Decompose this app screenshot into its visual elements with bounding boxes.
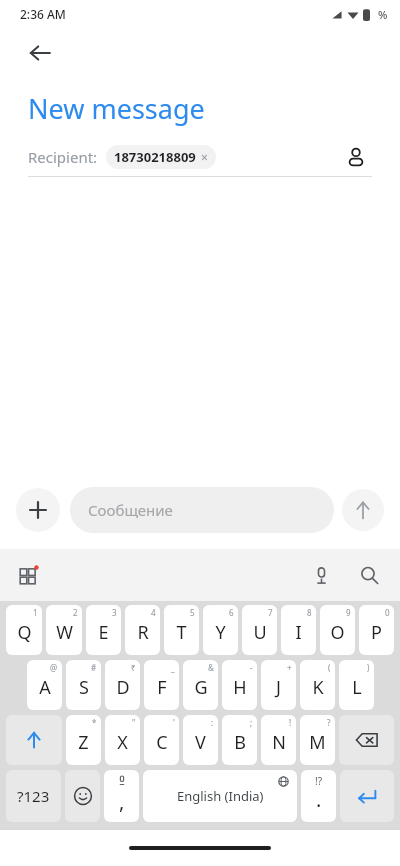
button[interactable]: '	[144, 715, 179, 765]
staticText: *	[92, 717, 97, 728]
button[interactable]: 1	[6, 605, 42, 655]
staticText: T	[176, 620, 187, 645]
button[interactable]: 7	[242, 605, 277, 655]
button[interactable]: *	[66, 715, 101, 765]
button[interactable]: Voice input	[304, 558, 338, 592]
staticText: ×	[201, 149, 208, 165]
staticText: ₹	[131, 662, 136, 673]
button[interactable]: Comma	[104, 770, 139, 822]
staticText: @	[50, 662, 58, 673]
staticText: %	[378, 7, 388, 22]
button[interactable]: Search	[352, 558, 386, 592]
button[interactable]: 2	[46, 605, 82, 655]
button[interactable]: 4	[125, 605, 160, 655]
staticText: F	[157, 675, 167, 700]
staticText: S	[79, 675, 89, 700]
staticText: W	[56, 620, 73, 645]
staticText: E	[98, 620, 109, 645]
button[interactable]: _	[144, 660, 179, 710]
staticText: !?	[315, 774, 323, 788]
staticText: 2:36 AM	[20, 6, 66, 22]
staticText: R	[137, 620, 149, 645]
staticText: K	[312, 675, 324, 700]
button[interactable]: @	[27, 660, 62, 710]
button[interactable]: Keyboard features	[12, 558, 46, 592]
staticText: V	[195, 730, 206, 755]
button[interactable]: !	[261, 715, 296, 765]
button[interactable]: Back	[18, 31, 62, 75]
button[interactable]: English (India)	[143, 770, 297, 822]
button[interactable]: )	[339, 660, 374, 710]
button[interactable]: Backspace	[339, 715, 394, 765]
button[interactable]: Сообщение	[70, 487, 334, 533]
staticText: 8	[307, 607, 312, 618]
button[interactable]: Contacts	[340, 141, 372, 173]
staticText: :	[211, 717, 214, 728]
staticText: ?123	[17, 786, 50, 806]
staticText: I	[295, 620, 302, 645]
staticText: ,	[119, 788, 125, 815]
button[interactable]: Send	[342, 489, 384, 531]
button[interactable]: 9	[320, 605, 355, 655]
staticText: O	[330, 620, 345, 645]
staticText: 5	[190, 607, 195, 618]
staticText: !	[289, 717, 292, 728]
staticText: ?	[327, 717, 331, 728]
staticText: 18730218809	[114, 148, 196, 166]
button[interactable]: ;	[222, 715, 257, 765]
staticText: C	[156, 730, 168, 755]
button[interactable]: 8	[281, 605, 316, 655]
staticText: B	[234, 730, 246, 755]
staticText: H	[233, 675, 247, 700]
staticText: #	[91, 662, 97, 673]
staticText: L	[352, 675, 362, 700]
staticText: New message	[28, 90, 205, 127]
button[interactable]: (	[300, 660, 335, 710]
staticText: ;	[250, 717, 253, 728]
button[interactable]: ?123	[6, 770, 61, 822]
staticText: D	[116, 675, 130, 700]
button[interactable]: Shift	[6, 715, 62, 765]
button[interactable]: 18730218809	[106, 145, 216, 169]
staticText: J	[276, 675, 281, 700]
staticText: -	[250, 662, 253, 673]
button[interactable]: :	[183, 715, 218, 765]
staticText: G	[194, 675, 208, 700]
staticText: +	[287, 662, 292, 673]
staticText: N	[272, 730, 286, 755]
staticText: English (India)	[177, 787, 264, 805]
staticText: 1	[33, 607, 38, 618]
button[interactable]: Emoji	[65, 770, 100, 822]
button[interactable]: Enter	[340, 770, 394, 822]
staticText: A	[39, 675, 51, 700]
button[interactable]: 3	[86, 605, 121, 655]
staticText: 3	[112, 607, 117, 618]
staticText: '	[173, 717, 175, 728]
button[interactable]: Add attachment	[16, 488, 60, 532]
staticText: U	[253, 620, 267, 645]
staticText: .	[316, 786, 322, 813]
button[interactable]: "	[105, 715, 140, 765]
button[interactable]: ₹	[105, 660, 140, 710]
button[interactable]: 6	[203, 605, 238, 655]
staticText: Recipient:	[28, 147, 98, 167]
button[interactable]: ?	[300, 715, 335, 765]
staticText: P	[371, 620, 382, 645]
button[interactable]: +	[261, 660, 296, 710]
staticText: Сообщение	[88, 500, 173, 520]
staticText: X	[117, 730, 128, 755]
staticText: 6	[229, 607, 234, 618]
staticText: Y	[215, 620, 226, 645]
button[interactable]: 5	[164, 605, 199, 655]
staticText: 0	[385, 607, 390, 618]
button[interactable]: #	[66, 660, 101, 710]
button[interactable]: 0	[359, 605, 394, 655]
staticText: (	[328, 662, 331, 673]
staticText: Q	[17, 620, 32, 645]
staticText: Z	[78, 730, 89, 755]
staticText: &	[208, 662, 214, 673]
button[interactable]: Period	[301, 770, 336, 822]
button[interactable]: &	[183, 660, 218, 710]
staticText: "	[132, 717, 136, 728]
button[interactable]: -	[222, 660, 257, 710]
